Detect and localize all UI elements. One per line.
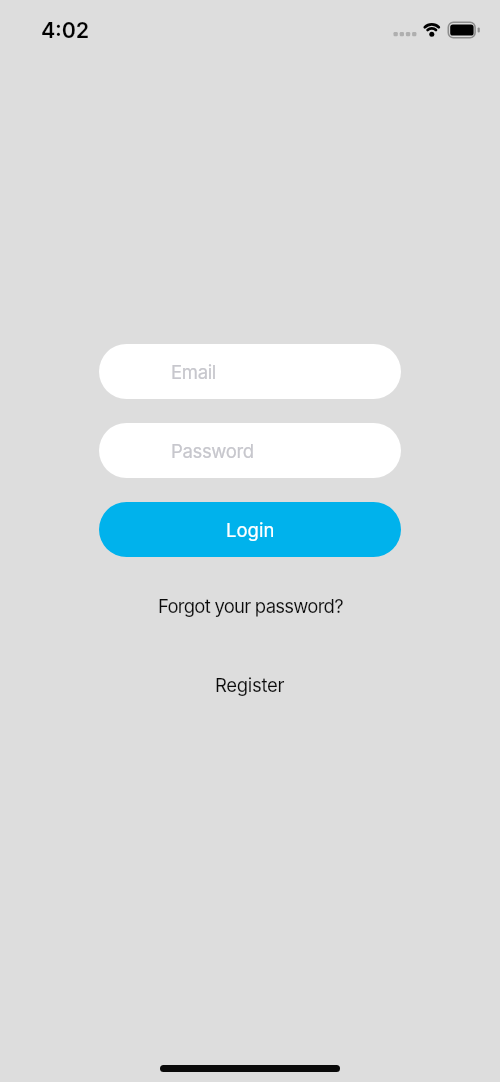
- staticText: Email: [171, 361, 216, 383]
- staticText: Forgot your password?: [158, 595, 343, 617]
- staticText: Password: [171, 440, 254, 462]
- staticText: 4:02: [41, 17, 89, 43]
- button[interactable]: Password: [99, 423, 401, 478]
- staticText: Register: [215, 674, 285, 696]
- button[interactable]: Login: [99, 502, 401, 557]
- button[interactable]: Register: [215, 674, 285, 696]
- button[interactable]: Email: [99, 344, 401, 399]
- button[interactable]: Forgot your password?: [158, 595, 343, 617]
- staticText: Login: [226, 519, 275, 541]
